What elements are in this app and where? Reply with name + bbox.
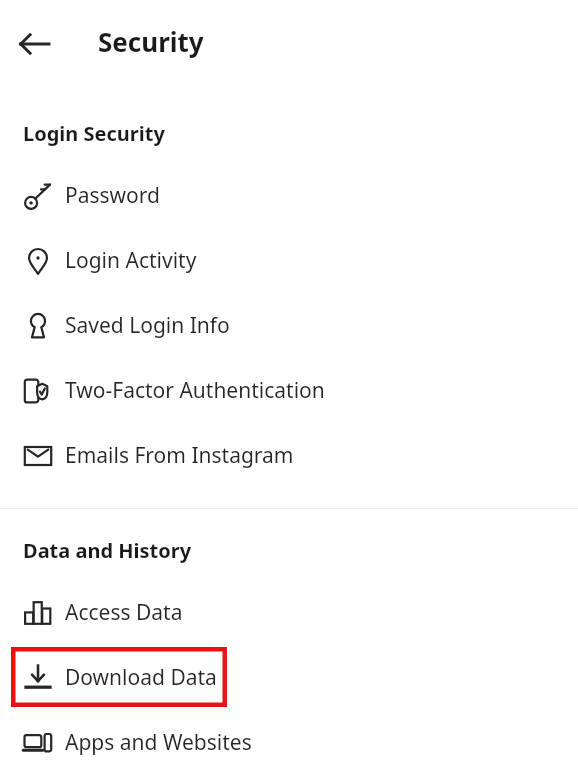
- staticText: Login Activity: [65, 246, 197, 275]
- staticText: Two-Factor Authentication: [65, 376, 325, 405]
- button[interactable]: Back: [12, 22, 56, 66]
- button[interactable]: Download Data: [11, 647, 227, 707]
- staticText: Saved Login Info: [65, 311, 230, 340]
- staticText: Download Data: [65, 663, 217, 692]
- button[interactable]: Emails From Instagram: [0, 423, 578, 488]
- staticText: Emails From Instagram: [65, 441, 294, 470]
- button[interactable]: Login Activity: [0, 228, 578, 293]
- staticText: Password: [65, 181, 160, 210]
- button[interactable]: Saved Login Info: [0, 293, 578, 358]
- staticText: Security: [98, 24, 204, 59]
- button[interactable]: Access Data: [0, 580, 578, 645]
- button[interactable]: Password: [0, 163, 578, 228]
- staticText: Apps and Websites: [65, 728, 252, 757]
- button[interactable]: Two-Factor Authentication: [0, 358, 578, 423]
- staticText: Data and History: [23, 537, 192, 564]
- button[interactable]: Apps and Websites: [0, 710, 578, 775]
- staticText: Access Data: [65, 598, 183, 627]
- staticText: Login Security: [23, 120, 165, 147]
